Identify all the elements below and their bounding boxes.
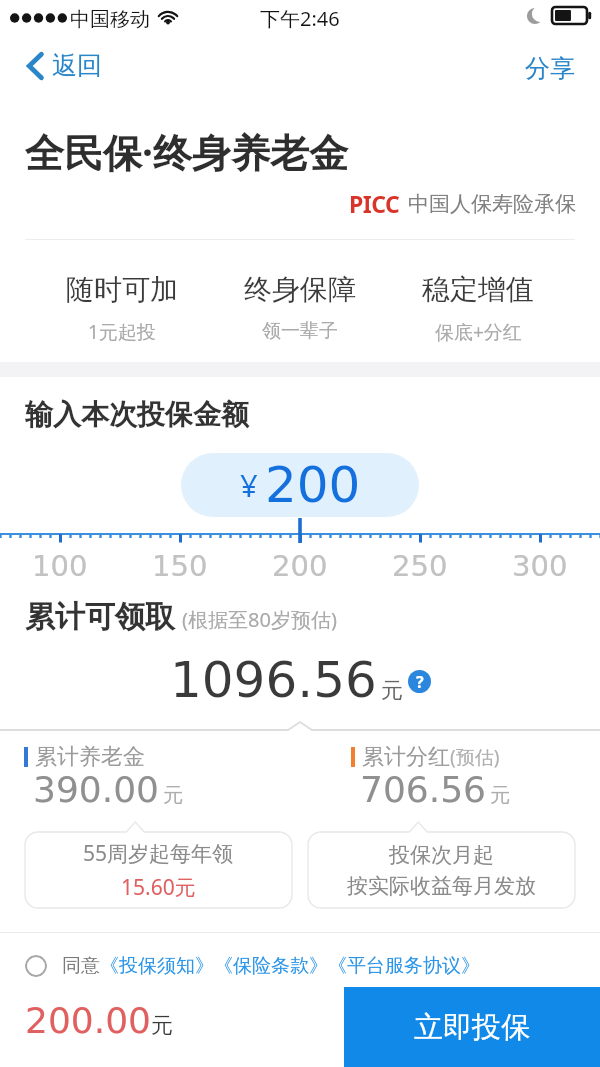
staticText: 累计分红 (362, 743, 450, 771)
button[interactable]: 立即投保 (344, 987, 600, 1067)
button[interactable]: 《投保须知》 (100, 954, 214, 978)
staticText: 全民保·终身养老金 (25, 125, 348, 178)
button[interactable]: ¥ (181, 453, 419, 517)
staticText: 150 (152, 549, 208, 583)
staticText: 按实际收益每月发放 (347, 873, 536, 899)
staticText: 领一辈子 (262, 319, 338, 343)
staticText: 200 (265, 456, 361, 514)
staticText: 250 (392, 549, 448, 583)
staticText: 390.00 (33, 769, 159, 811)
staticText: 300 (512, 549, 568, 583)
staticText: 累计可领取 (25, 598, 175, 636)
staticText: 终身保障 (244, 272, 356, 307)
staticText: (根据至80岁预估) (182, 606, 337, 633)
staticText: 1096.56 (170, 651, 377, 709)
staticText: 100 (32, 549, 88, 583)
button[interactable]: Back (13, 44, 118, 87)
staticText: 15.60元 (121, 873, 196, 902)
staticText: 返回 (52, 50, 102, 81)
staticText: 元 (151, 1012, 173, 1040)
button[interactable]: Agree checkbox (25, 955, 47, 977)
other: Back (27, 52, 43, 80)
staticText: 706.56 (360, 769, 486, 811)
staticText: 1元起投 (88, 319, 156, 345)
staticText: PICC (349, 188, 400, 219)
button[interactable]: 《保险条款》 (214, 954, 328, 978)
staticText: 分享 (525, 53, 575, 84)
staticText: 立即投保 (414, 1009, 530, 1046)
staticText: 元 (490, 783, 510, 808)
staticText: 中国人保寿险承保 (408, 191, 576, 217)
staticText: 累计养老金 (35, 743, 145, 771)
staticText: 投保次月起 (389, 842, 494, 868)
staticText: 200.00 (25, 1000, 151, 1042)
staticText: 中国移动 (70, 7, 150, 32)
staticText: 元 (381, 677, 403, 705)
staticText: 下午2:46 (260, 5, 340, 32)
staticText: 稳定增值 (422, 272, 534, 307)
staticText: ? (416, 671, 424, 693)
staticText: 元 (163, 783, 183, 808)
button[interactable]: Help (408, 670, 431, 693)
staticText: (预估) (450, 744, 500, 770)
button[interactable]: 分享 (509, 45, 591, 92)
button[interactable]: 《平台服务协议》 (328, 954, 480, 978)
staticText: 200 (272, 549, 328, 583)
staticText: 同意 (62, 954, 100, 978)
staticText: ¥ (240, 464, 258, 506)
staticText: 55周岁起每年领 (83, 839, 234, 868)
staticText: 随时可加 (66, 272, 178, 307)
staticText: 输入本次投保金额 (25, 397, 249, 432)
staticText: 保底+分红 (435, 319, 522, 345)
